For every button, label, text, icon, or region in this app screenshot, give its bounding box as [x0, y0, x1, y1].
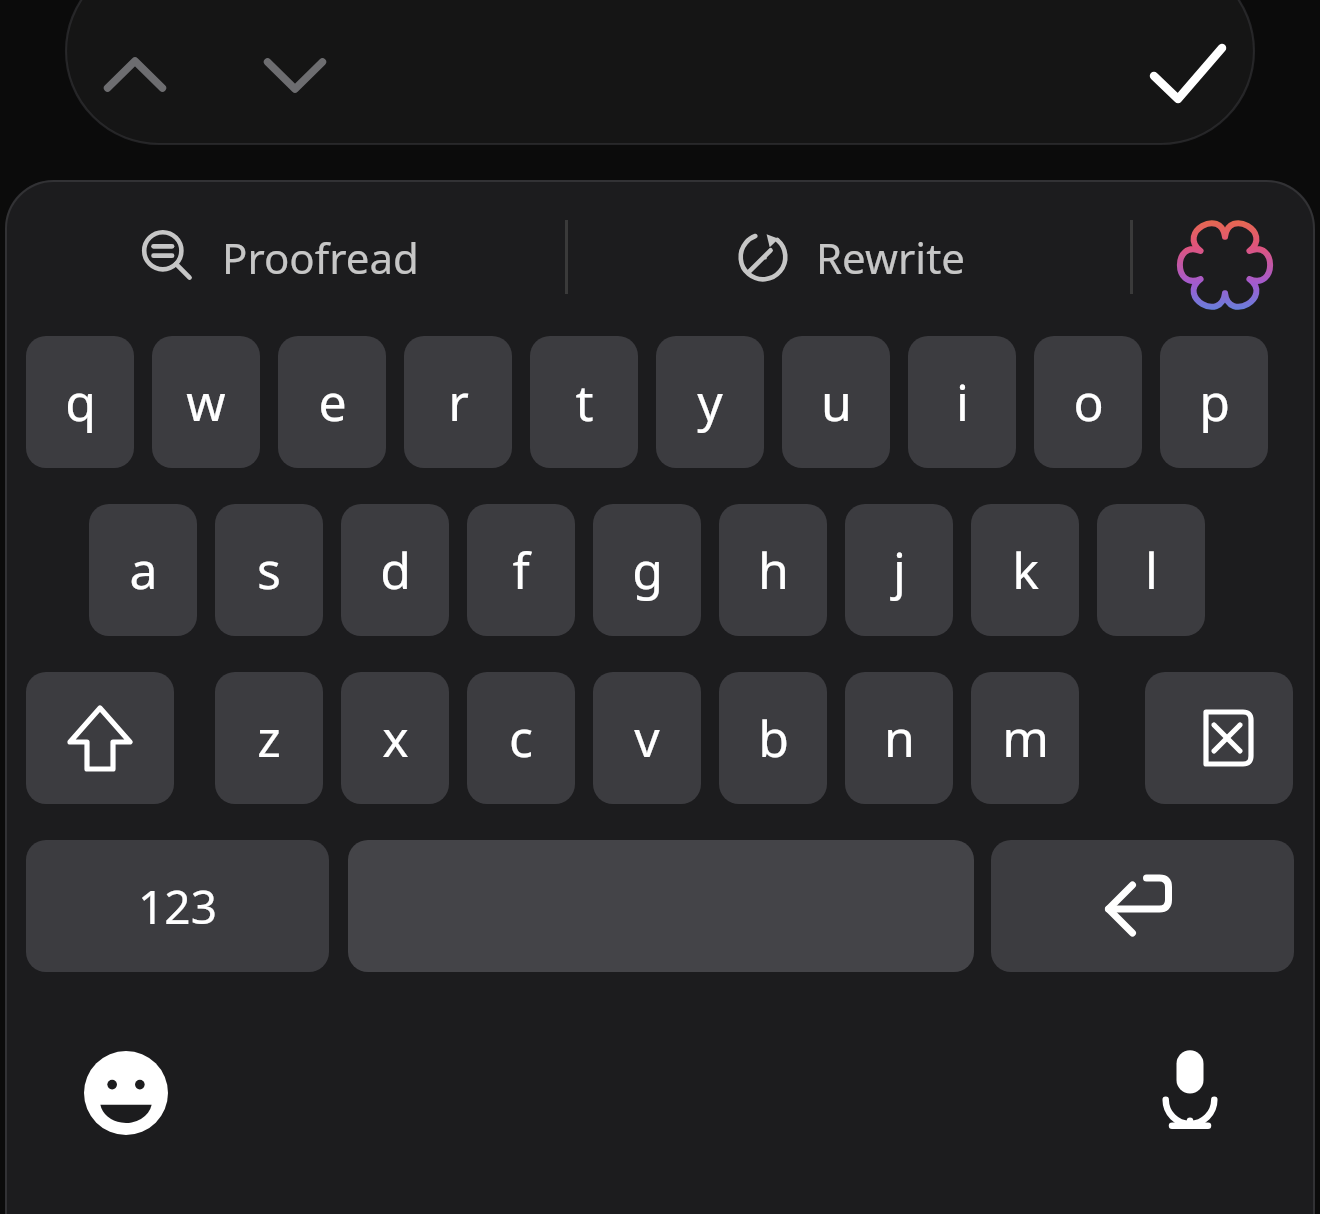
staticText: b — [758, 704, 789, 772]
staticText: u — [821, 368, 852, 436]
button[interactable]: b — [719, 672, 827, 804]
button[interactable]: p — [1160, 336, 1268, 468]
button[interactable]: i — [908, 336, 1016, 468]
button[interactable]: Enter — [991, 840, 1294, 972]
staticText: 123 — [138, 875, 217, 938]
staticText: p — [1199, 368, 1230, 436]
button[interactable]: f — [467, 504, 575, 636]
staticText: c — [509, 704, 533, 772]
button[interactable]: o — [1034, 336, 1142, 468]
staticText: e — [318, 368, 347, 436]
button[interactable]: n — [845, 672, 953, 804]
staticText: y — [697, 368, 723, 436]
staticText: w — [186, 368, 226, 436]
staticText: i — [956, 368, 969, 436]
button[interactable]: l — [1097, 504, 1205, 636]
staticText: n — [884, 704, 915, 772]
staticText: m — [1002, 704, 1049, 772]
button[interactable]: g — [593, 504, 701, 636]
button[interactable]: d — [341, 504, 449, 636]
staticText: Rewrite — [816, 229, 966, 286]
button[interactable]: e — [278, 336, 386, 468]
staticText: g — [632, 536, 663, 604]
button[interactable]: Emoji — [66, 1033, 186, 1153]
staticText: t — [575, 368, 594, 436]
staticText: h — [758, 536, 789, 604]
staticText: a — [129, 536, 158, 604]
button[interactable]: r — [404, 336, 512, 468]
button[interactable]: Shift — [26, 672, 174, 804]
button[interactable]: u — [782, 336, 890, 468]
button[interactable]: Rewrite — [640, 212, 1110, 302]
staticText: q — [65, 368, 96, 436]
button[interactable]: w — [152, 336, 260, 468]
button[interactable]: Done — [1136, 26, 1236, 126]
staticText: x — [382, 704, 409, 772]
staticText: z — [257, 704, 281, 772]
button[interactable]: m — [971, 672, 1079, 804]
staticText: Proofread — [222, 229, 419, 286]
button[interactable]: Next — [246, 26, 344, 124]
button[interactable]: c — [467, 672, 575, 804]
button[interactable]: AI assistant — [1178, 218, 1272, 312]
button[interactable]: y — [656, 336, 764, 468]
staticText: v — [634, 704, 660, 772]
button[interactable]: z — [215, 672, 323, 804]
staticText: d — [380, 536, 411, 604]
button[interactable]: q — [26, 336, 134, 468]
button[interactable]: Proofread — [40, 212, 540, 302]
staticText: l — [1145, 536, 1158, 604]
staticText: k — [1012, 536, 1039, 604]
button[interactable]: v — [593, 672, 701, 804]
button[interactable]: x — [341, 672, 449, 804]
button[interactable]: 123 — [26, 840, 329, 972]
staticText: s — [257, 536, 281, 604]
button[interactable]: j — [845, 504, 953, 636]
button[interactable]: a — [89, 504, 197, 636]
button[interactable]: h — [719, 504, 827, 636]
button[interactable]: Backspace — [1145, 672, 1293, 804]
button[interactable]: k — [971, 504, 1079, 636]
button[interactable]: t — [530, 336, 638, 468]
staticText: r — [448, 368, 469, 436]
staticText: j — [893, 536, 906, 604]
button[interactable]: Voice input — [1130, 1028, 1250, 1148]
staticText: f — [512, 536, 530, 604]
button[interactable]: s — [215, 504, 323, 636]
button[interactable]: Previous — [86, 26, 184, 124]
staticText: o — [1073, 368, 1104, 436]
